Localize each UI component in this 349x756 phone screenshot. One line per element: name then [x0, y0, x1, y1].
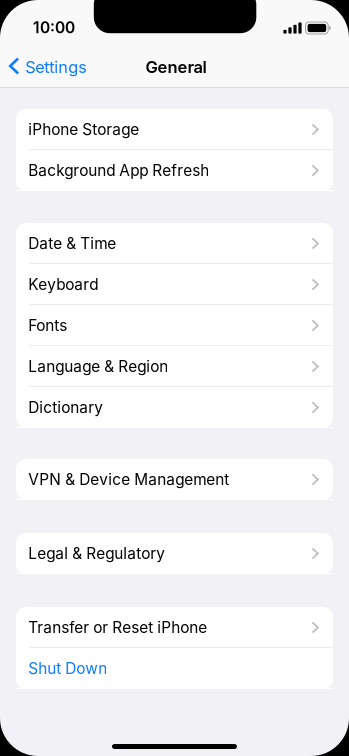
button[interactable]: iPhone Storage [16, 109, 333, 150]
button[interactable]: Keyboard [16, 264, 333, 305]
button[interactable]: VPN & Device Management [16, 459, 333, 500]
staticText: Settings [25, 57, 87, 77]
button[interactable]: Dictionary [16, 387, 333, 428]
staticText: Keyboard [28, 275, 98, 294]
staticText: Transfer or Reset iPhone [28, 618, 207, 637]
staticText: Date & Time [28, 234, 116, 253]
staticText: Fonts [28, 316, 67, 335]
staticText: Background App Refresh [28, 161, 209, 180]
button[interactable]: Settings [0, 49, 97, 85]
staticText: Dictionary [28, 398, 103, 417]
button[interactable]: Transfer or Reset iPhone [16, 607, 333, 648]
staticText: Shut Down [28, 659, 107, 678]
button[interactable]: Legal & Regulatory [16, 533, 333, 574]
button[interactable]: Language & Region [16, 346, 333, 387]
staticText: VPN & Device Management [28, 470, 229, 489]
staticText: Language & Region [28, 357, 168, 376]
staticText: Legal & Regulatory [28, 544, 165, 563]
button[interactable]: Date & Time [16, 223, 333, 264]
staticText: 10:00 [33, 18, 75, 37]
button[interactable]: Shut Down [16, 648, 333, 689]
staticText: General [145, 57, 206, 77]
button[interactable]: Background App Refresh [16, 150, 333, 191]
button[interactable]: Fonts [16, 305, 333, 346]
staticText: iPhone Storage [28, 120, 139, 139]
